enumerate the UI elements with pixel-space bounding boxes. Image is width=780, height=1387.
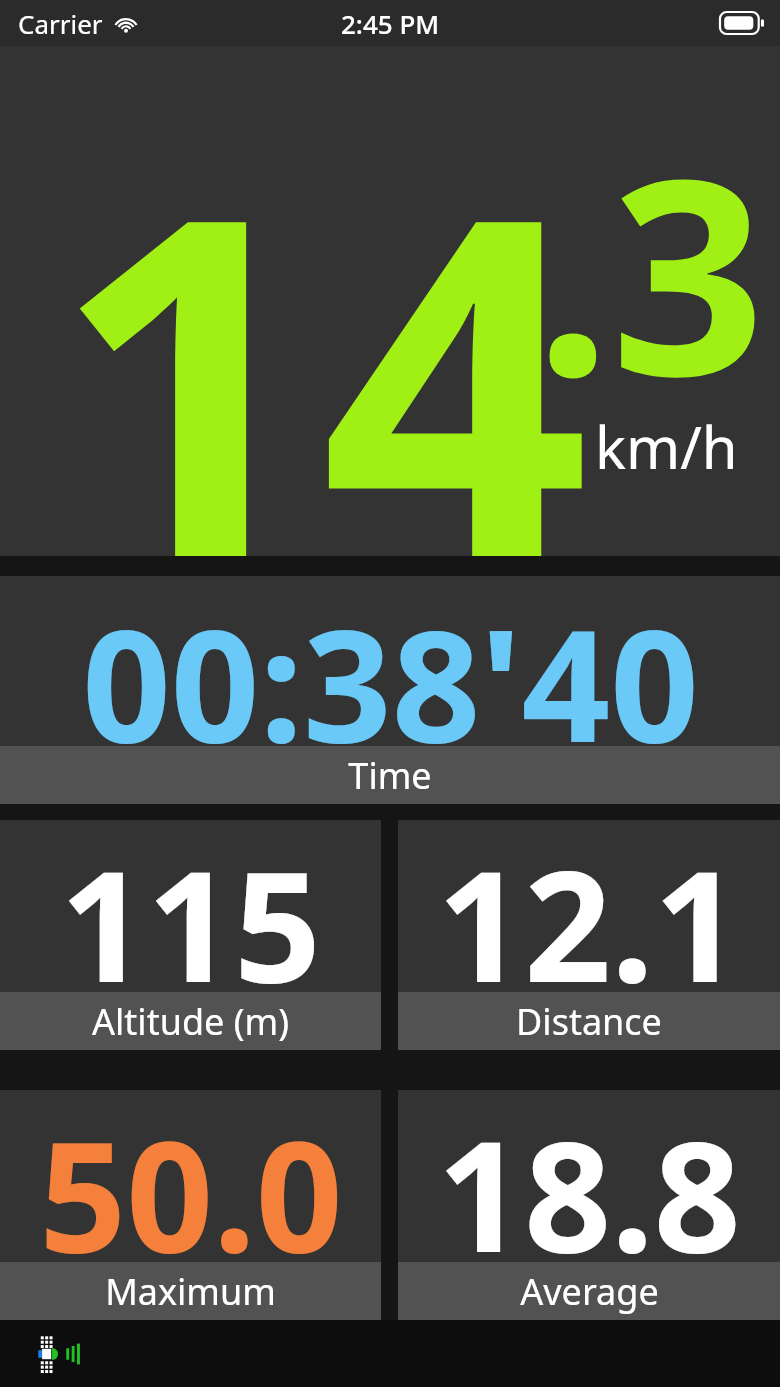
staticText: Time: [348, 751, 432, 800]
button[interactable]: 115: [0, 820, 381, 1050]
button[interactable]: 50.0: [0, 1090, 381, 1320]
button[interactable]: GPS signal status: [26, 1326, 88, 1382]
button[interactable]: 18.8: [398, 1090, 780, 1320]
staticText: 50.0: [39, 1090, 343, 1262]
staticText: Distance: [516, 997, 662, 1046]
staticText: 18.8: [437, 1090, 741, 1262]
staticText: Altitude (m): [92, 997, 289, 1046]
button[interactable]: 14: [0, 46, 780, 556]
button[interactable]: 00:38'40: [0, 576, 780, 804]
staticText: Maximum: [105, 1267, 276, 1316]
staticText: Carrier: [18, 6, 103, 41]
staticText: 115: [60, 820, 321, 992]
staticText: .3: [535, 86, 766, 454]
staticText: km/h: [595, 407, 738, 486]
staticText: 00:38'40: [82, 576, 699, 746]
staticText: 12.1: [437, 820, 741, 992]
staticText: 14: [52, 56, 590, 556]
staticText: Average: [520, 1267, 659, 1316]
staticText: 2:45 PM: [341, 6, 440, 41]
button[interactable]: 12.1: [398, 820, 780, 1050]
